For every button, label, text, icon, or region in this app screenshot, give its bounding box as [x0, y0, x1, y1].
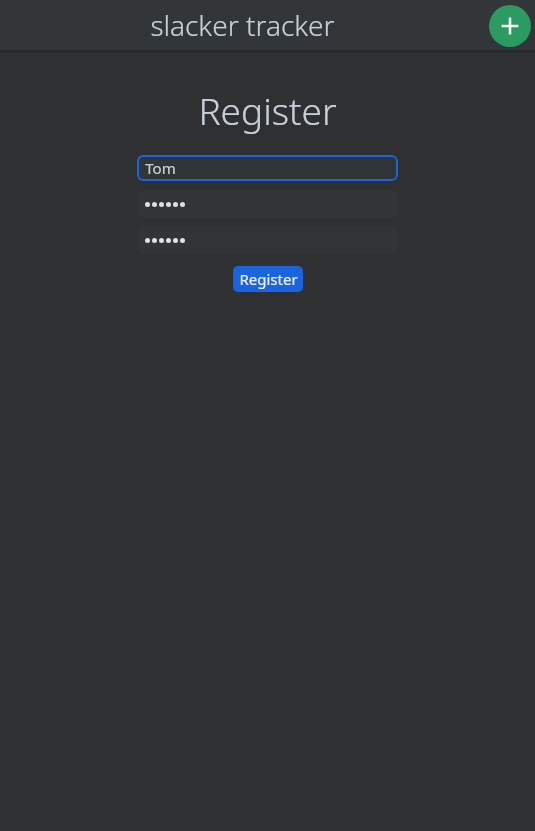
- button[interactable]: [137, 191, 398, 217]
- staticText: Register: [239, 269, 298, 289]
- staticText: Tom: [145, 158, 176, 178]
- button[interactable]: [137, 227, 398, 253]
- button[interactable]: Tom: [137, 155, 398, 181]
- staticText: Register: [198, 85, 337, 135]
- staticText: slacker tracker: [150, 6, 335, 44]
- button[interactable]: Add: [489, 5, 531, 47]
- button[interactable]: Register: [233, 266, 303, 292]
